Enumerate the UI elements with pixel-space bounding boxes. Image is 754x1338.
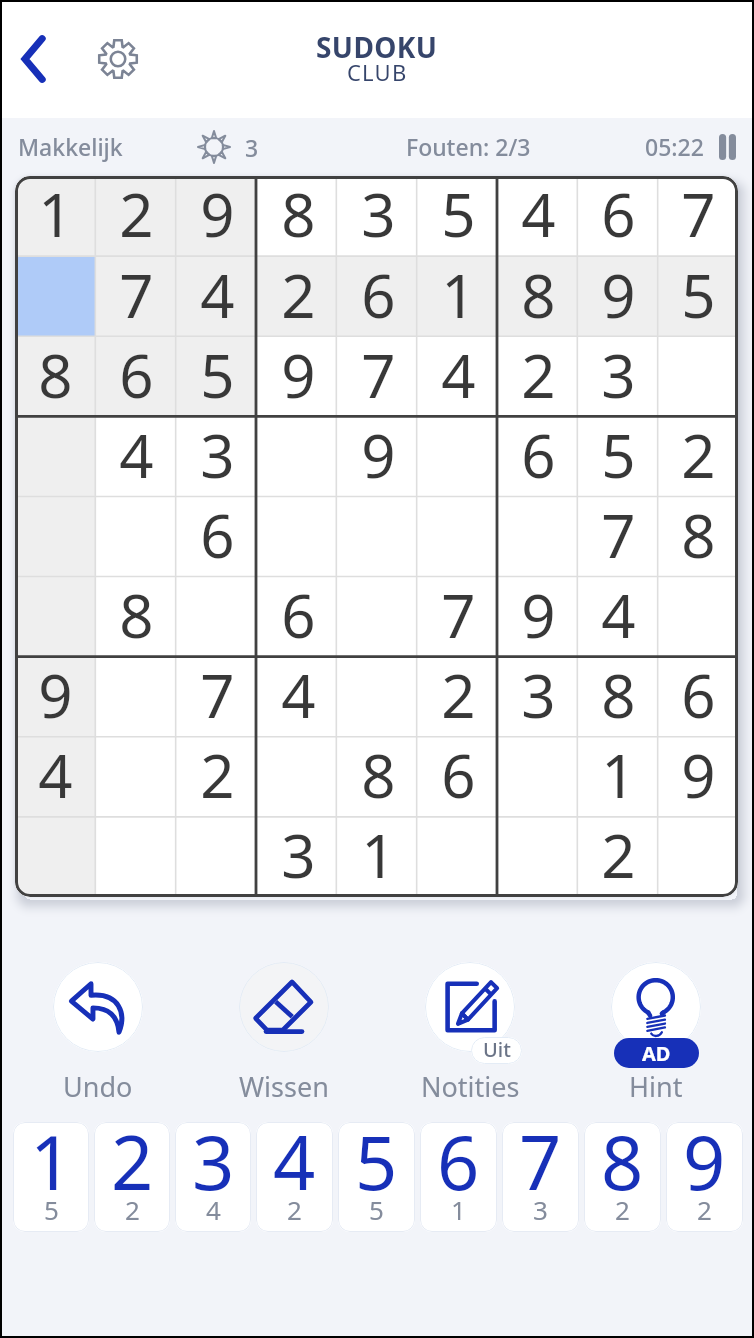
button[interactable]: 4 xyxy=(498,176,578,257)
button[interactable]: 8 xyxy=(658,497,738,577)
button[interactable] xyxy=(498,737,578,817)
button[interactable] xyxy=(338,657,418,737)
button[interactable]: 9 xyxy=(338,417,418,497)
button[interactable] xyxy=(96,657,177,737)
button[interactable]: Notities xyxy=(425,962,515,1052)
button[interactable]: 7 xyxy=(418,577,498,657)
button[interactable]: 8 xyxy=(498,257,578,337)
button[interactable]: 2 xyxy=(177,737,258,817)
button[interactable] xyxy=(498,497,578,577)
button[interactable] xyxy=(418,817,498,897)
button[interactable]: 3 xyxy=(578,337,658,417)
button[interactable]: 3 xyxy=(175,1122,251,1232)
button[interactable]: 4 xyxy=(15,737,96,817)
button[interactable]: 6 xyxy=(177,497,258,577)
button[interactable] xyxy=(177,577,258,657)
button[interactable]: Undo xyxy=(53,962,143,1052)
button[interactable]: 7 xyxy=(658,176,738,257)
button[interactable]: 3 xyxy=(498,657,578,737)
button[interactable]: 1 xyxy=(338,817,418,897)
button[interactable]: 6 xyxy=(578,176,658,257)
staticText: 8 xyxy=(601,1122,644,1212)
button[interactable] xyxy=(418,417,498,497)
button[interactable]: Back xyxy=(6,29,66,89)
button[interactable]: 4 xyxy=(418,337,498,417)
button[interactable] xyxy=(15,497,96,577)
button[interactable]: 7 xyxy=(338,337,418,417)
button[interactable] xyxy=(418,497,498,577)
button[interactable]: 1 xyxy=(418,257,498,337)
button[interactable] xyxy=(498,817,578,897)
button[interactable] xyxy=(177,817,258,897)
button[interactable]: 5 xyxy=(418,176,498,257)
button[interactable]: 2 xyxy=(96,176,177,257)
staticText: 7 xyxy=(441,574,476,654)
button[interactable]: 6 xyxy=(338,257,418,337)
button[interactable] xyxy=(15,417,96,497)
button[interactable]: 1 xyxy=(578,737,658,817)
button[interactable] xyxy=(258,417,338,497)
button[interactable]: 3 xyxy=(258,817,338,897)
button[interactable]: 4 xyxy=(578,577,658,657)
button[interactable]: 9 xyxy=(15,657,96,737)
button[interactable] xyxy=(15,257,96,337)
button[interactable]: 8 xyxy=(96,577,177,657)
button[interactable]: 9 xyxy=(177,176,258,257)
button[interactable] xyxy=(338,497,418,577)
button[interactable]: 9 xyxy=(666,1122,743,1232)
button[interactable]: 7 xyxy=(177,657,258,737)
button[interactable] xyxy=(658,817,738,897)
button[interactable] xyxy=(338,577,418,657)
button[interactable]: 5 xyxy=(338,1122,415,1232)
staticText: 5 xyxy=(355,1122,398,1212)
button[interactable]: Settings xyxy=(88,29,148,89)
button[interactable] xyxy=(96,817,177,897)
button[interactable]: 4 xyxy=(177,257,258,337)
button[interactable]: 8 xyxy=(15,337,96,417)
button[interactable]: 4 xyxy=(258,657,338,737)
button[interactable]: 7 xyxy=(578,497,658,577)
button[interactable] xyxy=(658,337,738,417)
button[interactable] xyxy=(15,817,96,897)
button[interactable]: Pause xyxy=(712,132,742,162)
button[interactable]: 9 xyxy=(578,257,658,337)
button[interactable]: 1 xyxy=(15,176,96,257)
button[interactable]: 6 xyxy=(258,577,338,657)
button[interactable]: 8 xyxy=(258,176,338,257)
button[interactable]: 2 xyxy=(94,1122,170,1232)
button[interactable]: 4 xyxy=(96,417,177,497)
button[interactable]: 2 xyxy=(258,257,338,337)
button[interactable]: 3 xyxy=(338,176,418,257)
button[interactable] xyxy=(96,497,177,577)
button[interactable]: 8 xyxy=(578,657,658,737)
button[interactable]: 1 xyxy=(13,1122,89,1232)
button[interactable]: 9 xyxy=(258,337,338,417)
button[interactable]: 6 xyxy=(418,737,498,817)
button[interactable]: Hint xyxy=(611,962,701,1052)
button[interactable] xyxy=(658,577,738,657)
button[interactable]: 2 xyxy=(658,417,738,497)
button[interactable]: 8 xyxy=(338,737,418,817)
button[interactable]: 7 xyxy=(502,1122,579,1232)
button[interactable] xyxy=(15,577,96,657)
button[interactable]: 6 xyxy=(96,337,177,417)
button[interactable]: 5 xyxy=(578,417,658,497)
button[interactable]: 5 xyxy=(177,337,258,417)
button[interactable] xyxy=(258,737,338,817)
button[interactable]: 9 xyxy=(498,577,578,657)
button[interactable]: 4 xyxy=(256,1122,333,1232)
button[interactable]: Wissen xyxy=(239,962,329,1052)
button[interactable]: 2 xyxy=(498,337,578,417)
button[interactable]: 8 xyxy=(584,1122,661,1232)
button[interactable] xyxy=(96,737,177,817)
button[interactable]: 7 xyxy=(96,257,177,337)
button[interactable]: 2 xyxy=(418,657,498,737)
button[interactable]: 6 xyxy=(658,657,738,737)
button[interactable] xyxy=(258,497,338,577)
button[interactable]: 9 xyxy=(658,737,738,817)
button[interactable]: 6 xyxy=(498,417,578,497)
button[interactable]: 2 xyxy=(578,817,658,897)
button[interactable]: 6 xyxy=(420,1122,497,1232)
button[interactable]: 5 xyxy=(658,257,738,337)
button[interactable]: 3 xyxy=(177,417,258,497)
